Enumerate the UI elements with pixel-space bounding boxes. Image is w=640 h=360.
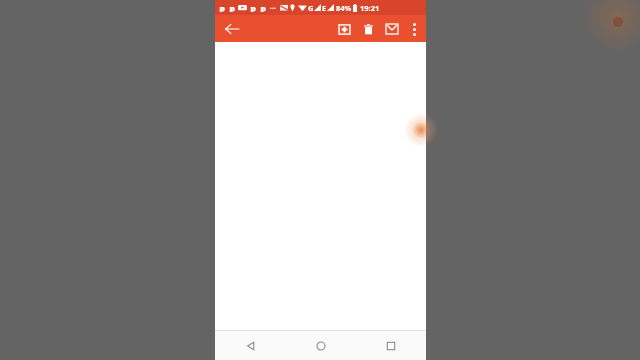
button[interactable]: Back (215, 331, 286, 360)
button[interactable]: Recents (356, 331, 426, 360)
button[interactable]: Back (220, 17, 244, 41)
button[interactable]: Home (286, 331, 356, 360)
staticText: G (308, 3, 314, 13)
staticText: P (250, 3, 256, 12)
button[interactable]: More options (404, 19, 424, 39)
staticText: P (229, 3, 235, 12)
button[interactable]: Delete (356, 17, 380, 41)
button[interactable]: Mail (380, 17, 404, 41)
staticText: E (322, 3, 327, 13)
staticText: P (260, 3, 266, 12)
staticText: 84% (336, 3, 352, 13)
staticText: P (219, 3, 225, 12)
staticText: 19:21 (360, 3, 380, 13)
button[interactable]: Add (332, 17, 356, 41)
